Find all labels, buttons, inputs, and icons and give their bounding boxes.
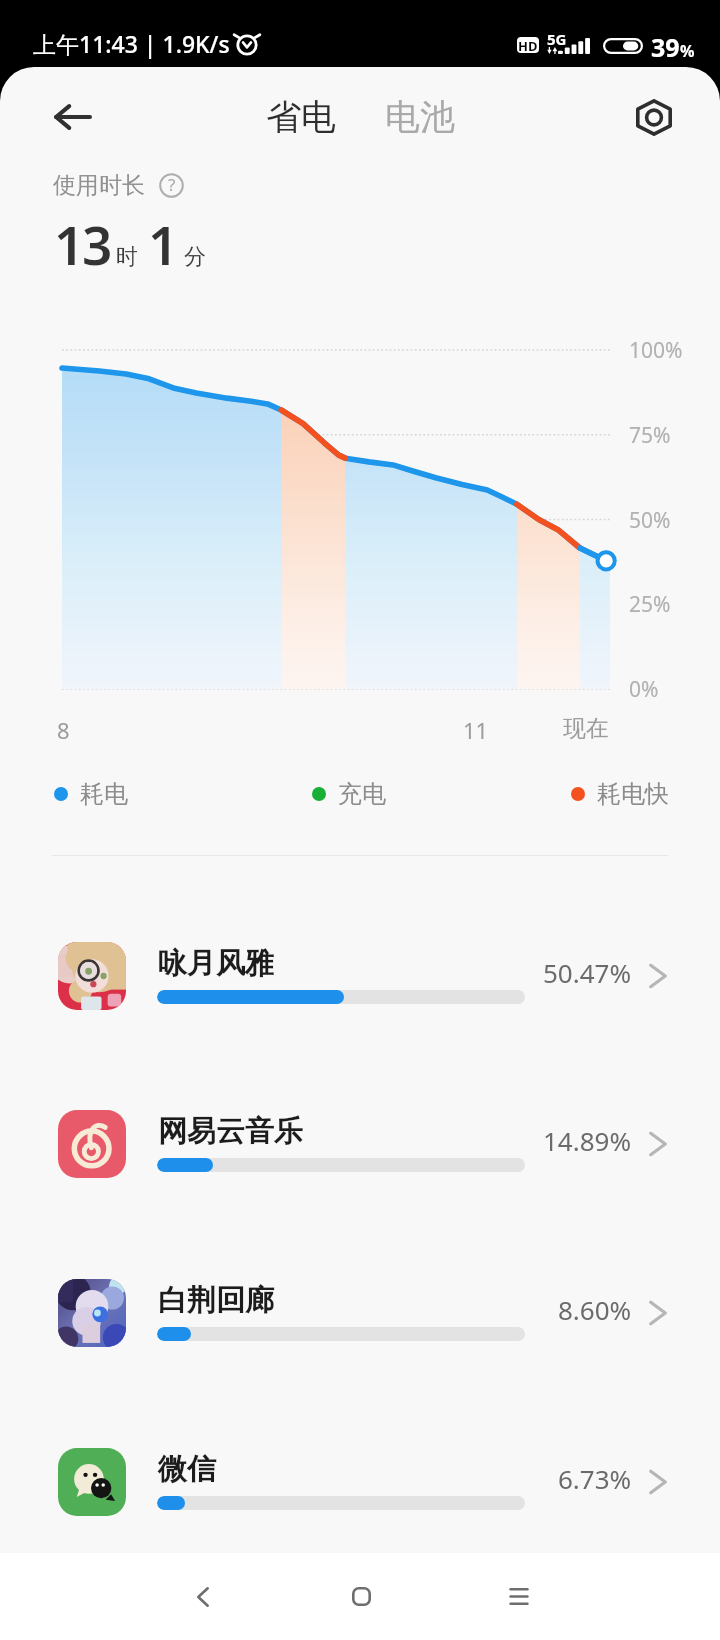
button[interactable]: 省电 xyxy=(258,85,344,149)
staticText: 现在 xyxy=(563,714,609,743)
staticText: 充电 xyxy=(338,779,386,809)
staticText: 使用时长 xyxy=(53,171,145,200)
staticText: 8 xyxy=(57,715,70,745)
button[interactable]: Back xyxy=(38,82,108,152)
staticText: 1 xyxy=(148,208,176,280)
staticText: 100% xyxy=(629,336,683,365)
staticText: 白荆回廊 xyxy=(158,1282,274,1319)
button[interactable]: 充电 xyxy=(312,777,386,811)
staticText: 时 xyxy=(116,243,138,271)
button[interactable]: 白荆回廊 xyxy=(0,1241,720,1385)
staticText: 13 xyxy=(54,208,110,280)
staticText: 网易云音乐 xyxy=(158,1113,303,1150)
button[interactable]: 耗电快 xyxy=(571,777,669,811)
staticText: ? xyxy=(168,173,176,196)
staticText: 50.47% xyxy=(543,955,632,990)
staticText: 14.89% xyxy=(543,1123,632,1158)
button[interactable]: Settings xyxy=(624,87,684,147)
staticText: 0% xyxy=(629,675,659,704)
button[interactable]: 咏月风雅 xyxy=(0,904,720,1048)
button[interactable]: 电池 xyxy=(377,85,463,149)
staticText: HD xyxy=(518,37,538,53)
staticText: 39 xyxy=(651,30,680,64)
button[interactable]: Back xyxy=(163,1553,243,1640)
staticText: 上午11:43 | 1.9K/s xyxy=(33,28,230,59)
button[interactable]: 耗电 xyxy=(54,777,128,811)
button[interactable]: 网易云音乐 xyxy=(0,1072,720,1216)
staticText: 耗电 xyxy=(80,779,128,809)
staticText: 50% xyxy=(629,506,671,535)
staticText: 微信 xyxy=(158,1451,216,1488)
button[interactable]: Recents xyxy=(479,1553,559,1640)
staticText: 11 xyxy=(463,715,489,745)
staticText: 耗电快 xyxy=(597,779,669,809)
staticText: 6.73% xyxy=(558,1461,632,1496)
staticText: 省电 xyxy=(266,95,336,139)
staticText: 5G xyxy=(547,29,567,49)
button[interactable]: 微信 xyxy=(0,1410,720,1554)
staticText: 25% xyxy=(629,590,671,619)
button[interactable]: Home xyxy=(321,1553,401,1640)
staticText: 分 xyxy=(184,243,206,271)
staticText: 咏月风雅 xyxy=(158,945,274,982)
staticText: % xyxy=(680,40,695,62)
staticText: 75% xyxy=(629,421,671,450)
staticText: 8.60% xyxy=(558,1292,632,1327)
staticText: 电池 xyxy=(385,95,455,139)
